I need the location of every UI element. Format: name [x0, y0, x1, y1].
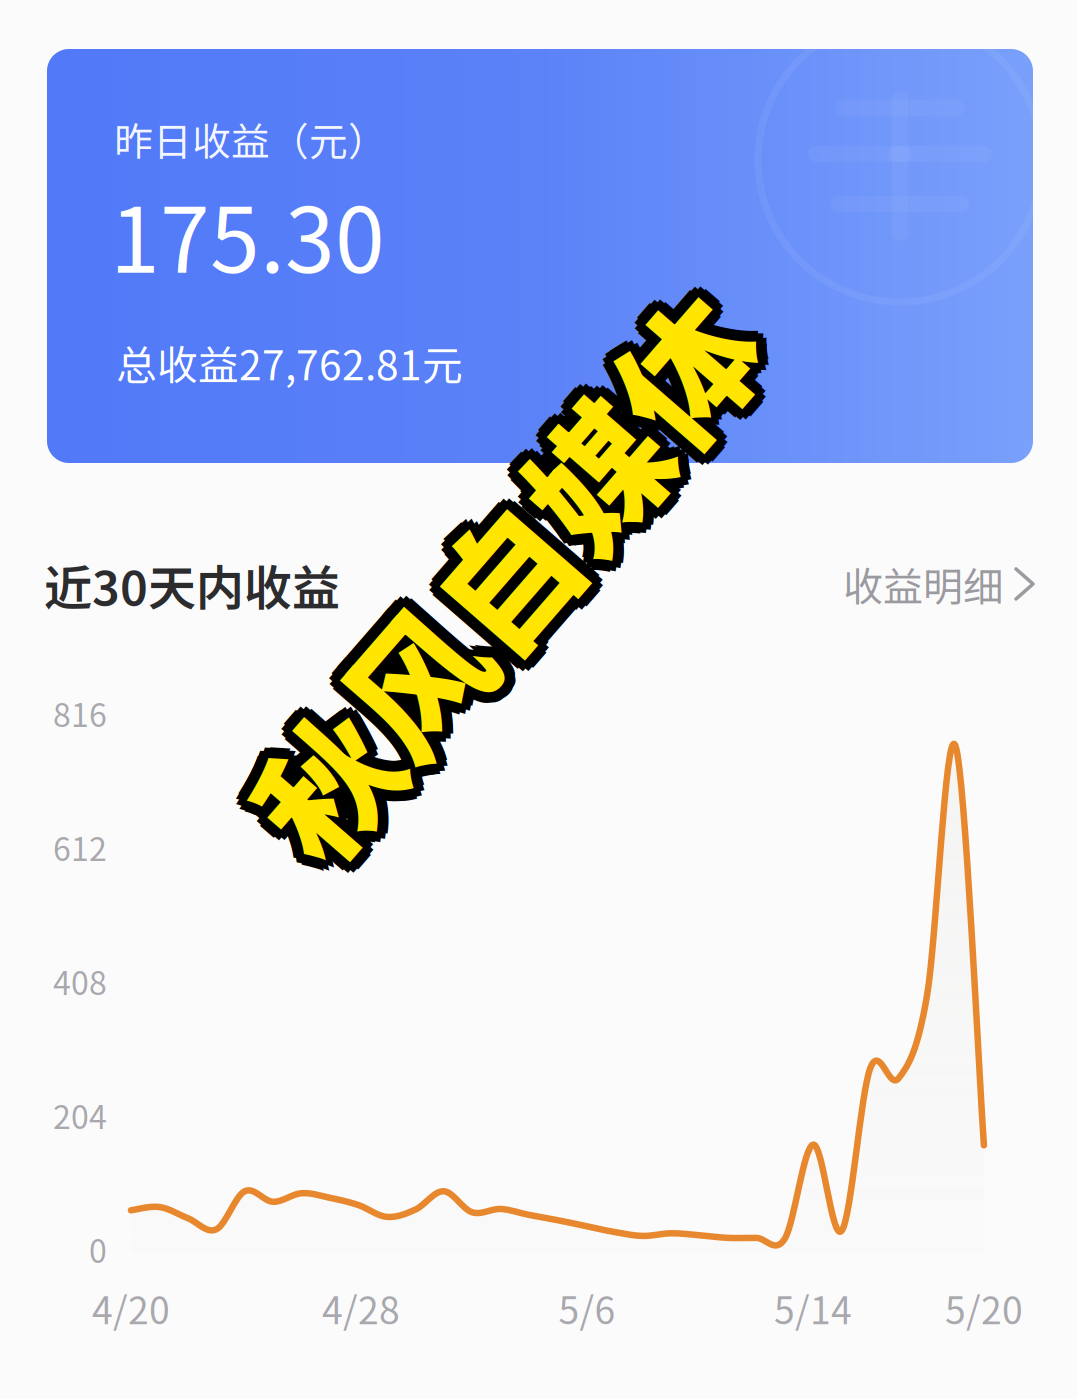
staticText: 秋风自媒体: [160, 465, 845, 663]
staticText: 秋风自媒体: [149, 476, 834, 674]
staticText: 秋风自媒体: [166, 479, 851, 677]
staticText: 秋风自媒体: [171, 476, 856, 674]
staticText: 秋风自媒体: [166, 476, 851, 674]
staticText: 秋风自媒体: [157, 481, 842, 680]
staticText: 175.30: [110, 169, 385, 298]
staticText: 204: [53, 1092, 107, 1138]
staticText: 秋风自媒体: [160, 476, 845, 674]
staticText: 秋风自媒体: [155, 479, 840, 677]
staticText: 秋风自媒体: [157, 470, 842, 669]
staticText: 0: [89, 1226, 107, 1272]
staticText: 秋风自媒体: [163, 470, 848, 669]
staticText: 秋风自媒体: [151, 481, 836, 680]
staticText: 408: [53, 958, 107, 1004]
staticText: 秋风自媒体: [160, 487, 845, 685]
staticText: 秋风自媒体: [151, 470, 836, 669]
staticText: 近30天内收益: [44, 550, 340, 619]
staticText: 秋风自媒体: [155, 466, 840, 665]
staticText: 816: [53, 690, 107, 736]
staticText: 秋风自媒体: [166, 466, 851, 665]
staticText: 秋风自媒体: [154, 476, 839, 674]
staticText: 4/28: [322, 1281, 400, 1335]
staticText: 收益明细: [843, 555, 1003, 613]
staticText: 秋风自媒体: [166, 473, 851, 671]
staticText: 秋风自媒体: [166, 485, 851, 684]
staticText: 秋风自媒体: [160, 482, 845, 680]
staticText: 秋风自媒体: [155, 473, 840, 671]
staticText: 秋风自媒体: [155, 485, 840, 684]
staticText: 秋风自媒体: [160, 470, 845, 668]
staticText: 612: [53, 824, 107, 870]
button[interactable]: 收益明细: [839, 543, 1037, 625]
staticText: 秋风自媒体: [170, 481, 855, 680]
staticText: 总收益27,762.81元: [116, 333, 463, 392]
staticText: 5/14: [774, 1281, 852, 1335]
staticText: 4/20: [92, 1281, 170, 1335]
staticText: 5/20: [945, 1281, 1023, 1335]
staticText: 昨日收益（元）: [114, 111, 387, 167]
staticText: 秋风自媒体: [163, 481, 848, 680]
staticText: 5/6: [558, 1281, 615, 1335]
staticText: 秋风自媒体: [170, 470, 855, 669]
